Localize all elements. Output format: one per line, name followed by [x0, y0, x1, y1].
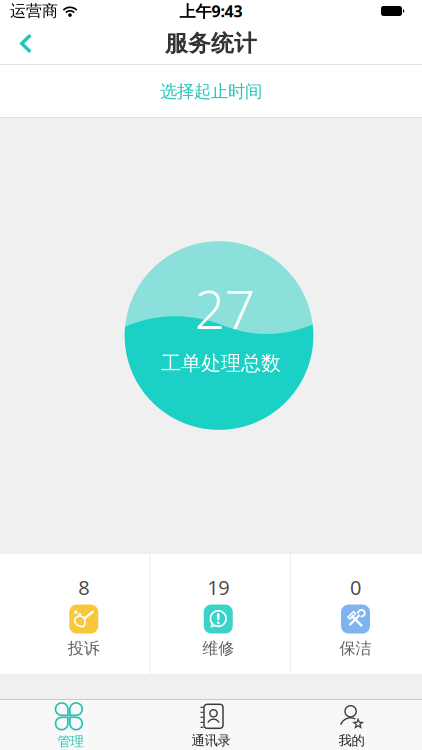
button[interactable]: 管理	[0, 701, 141, 750]
staticText: 管理	[57, 733, 83, 750]
button[interactable]: 我的	[281, 701, 422, 750]
staticText: 0	[350, 574, 361, 601]
button[interactable]: 通讯录	[141, 701, 281, 750]
staticText: 8	[78, 574, 89, 601]
staticText: 上午9:43	[179, 0, 242, 22]
staticText: 通讯录	[191, 732, 230, 749]
staticText: 19	[207, 574, 229, 601]
staticText: 27	[194, 273, 254, 344]
staticText: 选择起止时间	[160, 81, 262, 102]
staticText: 工单处理总数	[161, 351, 281, 376]
button[interactable]: Back	[0, 22, 32, 65]
staticText: 维修	[202, 639, 234, 658]
staticText: 运营商	[10, 1, 58, 21]
staticText: 投诉	[68, 639, 100, 658]
staticText: 服务统计	[165, 30, 257, 57]
staticText: 保洁	[339, 639, 371, 658]
button[interactable]: 选择起止时间	[0, 65, 422, 118]
staticText: 我的	[339, 732, 365, 749]
